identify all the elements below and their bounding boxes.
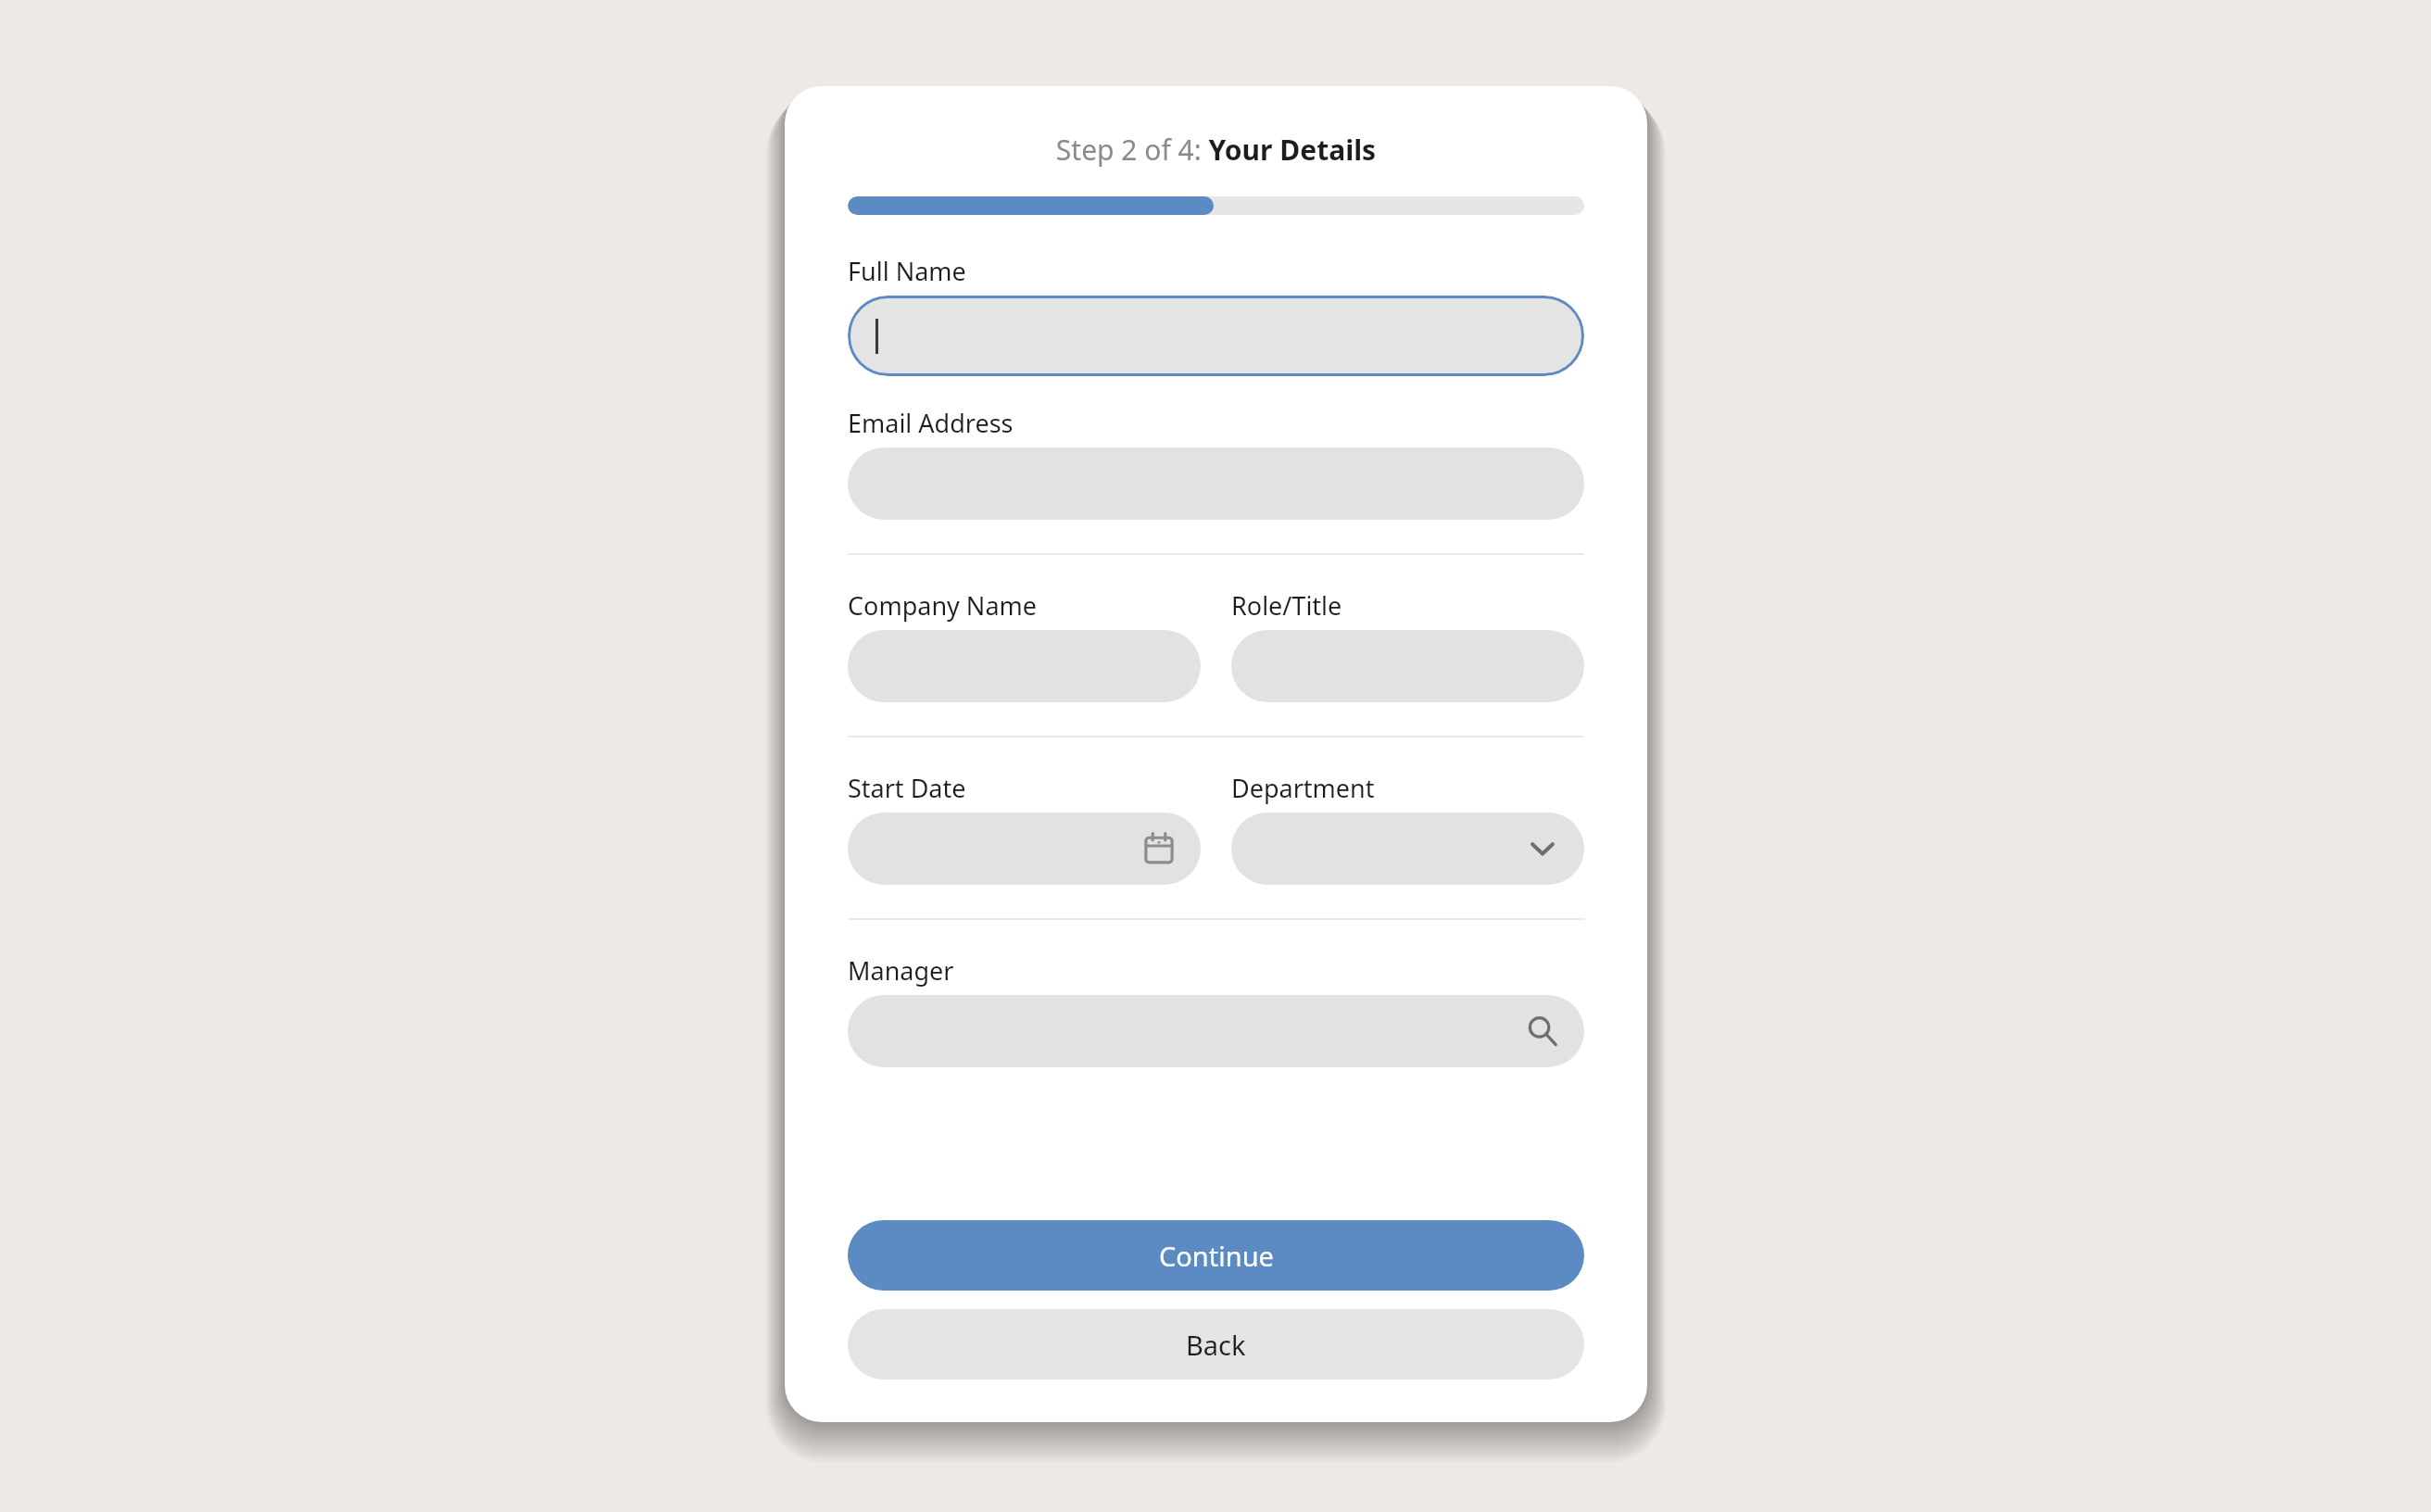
button[interactable]: Pick start date <box>848 813 1201 885</box>
staticText: Manager <box>848 953 954 988</box>
staticText: Back <box>1186 1327 1246 1363</box>
staticText: Role/Title <box>1231 588 1342 623</box>
staticText: Full Name <box>848 254 966 288</box>
button[interactable]: Search manager <box>848 995 1584 1067</box>
button[interactable]: Back <box>848 1309 1584 1380</box>
button[interactable] <box>1231 630 1584 702</box>
staticText: Start Date <box>848 771 966 805</box>
staticText: Company Name <box>848 588 1038 623</box>
staticText: Email Address <box>848 406 1014 440</box>
staticText: Step 2 of 4: Your Details <box>848 131 1584 169</box>
button[interactable] <box>848 630 1201 702</box>
staticText: Continue <box>1159 1238 1274 1274</box>
button[interactable] <box>848 447 1584 520</box>
button[interactable]: Continue <box>848 1220 1584 1291</box>
button[interactable]: Select department <box>1231 813 1584 885</box>
button[interactable] <box>848 296 1584 376</box>
staticText: Department <box>1231 771 1375 805</box>
